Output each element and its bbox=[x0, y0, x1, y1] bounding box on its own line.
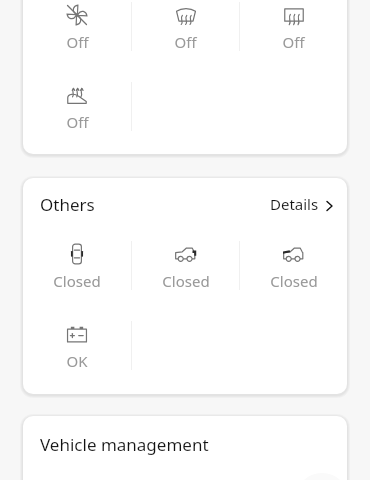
button[interactable]: Doors closed bbox=[23, 240, 131, 291]
staticText: Off bbox=[174, 32, 197, 52]
other: Front defrost off bbox=[175, 4, 197, 26]
other: Hood closed bbox=[283, 243, 305, 265]
staticText: OK bbox=[66, 351, 88, 371]
other: Doors closed bbox=[66, 243, 88, 265]
button[interactable]: Front defrost off bbox=[132, 1, 239, 52]
other: Seat heating off bbox=[66, 84, 88, 106]
button[interactable]: Battery OK bbox=[23, 320, 131, 371]
staticText: Closed bbox=[270, 271, 318, 291]
button[interactable]: Hood closed bbox=[240, 240, 347, 291]
staticText: Closed bbox=[53, 271, 101, 291]
other: Rear defrost off bbox=[283, 4, 305, 26]
button[interactable]: Trunk closed bbox=[132, 240, 239, 291]
staticText: Vehicle management bbox=[40, 433, 209, 456]
staticText: Closed bbox=[162, 271, 210, 291]
staticText: Others bbox=[40, 193, 95, 216]
staticText: Off bbox=[66, 32, 89, 52]
other: Ventilation off bbox=[66, 4, 88, 26]
button[interactable]: Ventilation off bbox=[23, 1, 131, 52]
other: Trunk closed bbox=[175, 243, 197, 265]
staticText: Off bbox=[66, 112, 89, 132]
button[interactable]: Seat heating off bbox=[23, 81, 131, 132]
other: Battery OK bbox=[66, 323, 88, 345]
button[interactable]: Details bbox=[267, 188, 338, 220]
button[interactable]: Rear defrost off bbox=[240, 1, 347, 52]
staticText: Details bbox=[270, 194, 319, 214]
staticText: Off bbox=[282, 32, 305, 52]
